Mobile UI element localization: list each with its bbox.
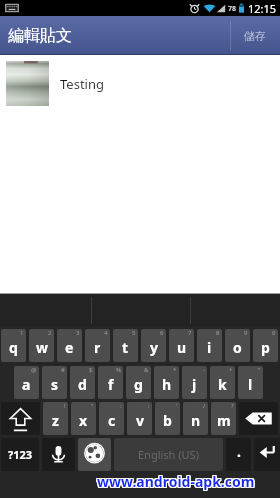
staticText: www.android-apk.com xyxy=(96,471,254,490)
button[interactable]: 1 xyxy=(1,329,26,362)
button[interactable]: 9 xyxy=(225,329,250,362)
staticText: t xyxy=(122,338,129,357)
button[interactable]: / xyxy=(183,402,208,435)
button[interactable]: 4 xyxy=(85,329,110,362)
button[interactable]: ? xyxy=(211,402,236,435)
button[interactable]: & xyxy=(126,366,151,399)
button[interactable]: * xyxy=(154,366,179,399)
staticText: 3 xyxy=(76,329,80,337)
staticText: g xyxy=(134,375,143,394)
button[interactable]: $ xyxy=(70,366,95,399)
staticText: : xyxy=(120,402,122,410)
button[interactable]: + xyxy=(210,366,235,399)
staticText: j xyxy=(192,375,197,394)
button[interactable]: . xyxy=(226,438,251,471)
staticText: www.android-apk.com xyxy=(98,472,256,491)
staticText: p xyxy=(261,338,270,357)
button[interactable]: Delete xyxy=(239,402,278,435)
staticText: d xyxy=(78,375,87,394)
button[interactable]: : xyxy=(99,402,124,435)
staticText: www.android-apk.com xyxy=(98,473,256,492)
button[interactable]: " xyxy=(71,402,96,435)
staticText: www.android-apk.com xyxy=(96,472,254,491)
staticText: * xyxy=(173,366,177,374)
button[interactable]: % xyxy=(98,366,123,399)
button[interactable]: 6 xyxy=(141,329,166,362)
staticText: m xyxy=(217,411,231,430)
button[interactable]: ?123 xyxy=(1,438,39,471)
button[interactable]: 2 xyxy=(29,329,54,362)
staticText: 7 xyxy=(188,329,192,337)
staticText: 9 xyxy=(244,329,248,337)
staticText: www.android-apk.com xyxy=(96,473,254,492)
staticText: n xyxy=(191,411,201,430)
staticText: l xyxy=(248,375,253,394)
button[interactable]: English (US) xyxy=(114,438,223,471)
staticText: " xyxy=(91,402,94,410)
button[interactable]: ! xyxy=(43,402,68,435)
staticText: q xyxy=(9,338,18,357)
button[interactable]: 8 xyxy=(197,329,222,362)
staticText: # xyxy=(61,366,65,374)
button[interactable]: @ xyxy=(14,366,39,399)
staticText: 1 xyxy=(20,329,24,337)
staticText: k xyxy=(218,375,227,394)
button[interactable]: Shift xyxy=(1,402,40,435)
staticText: www.android-apk.com xyxy=(98,471,256,490)
staticText: i xyxy=(207,338,212,357)
staticText: 12:15 xyxy=(248,1,277,16)
button[interactable]: # xyxy=(42,366,67,399)
button[interactable]: 0 xyxy=(253,329,278,362)
button[interactable]: Testing xyxy=(0,55,280,112)
button[interactable]: " xyxy=(238,366,263,399)
staticText: ' xyxy=(176,402,178,410)
button[interactable]: Enter xyxy=(254,438,280,471)
staticText: Testing xyxy=(60,75,104,93)
staticText: . xyxy=(237,442,241,461)
button[interactable]: - xyxy=(182,366,207,399)
staticText: x xyxy=(79,411,88,430)
staticText: 8 xyxy=(216,329,220,337)
staticText: f xyxy=(108,375,114,394)
staticText: u xyxy=(177,338,187,357)
staticText: 4 xyxy=(104,329,108,337)
staticText: h xyxy=(162,375,172,394)
staticText: e xyxy=(65,338,74,357)
staticText: @ xyxy=(31,366,37,374)
staticText: 5 xyxy=(132,329,136,337)
staticText: 0 xyxy=(272,329,276,337)
button[interactable]: ' xyxy=(155,402,180,435)
staticText: z xyxy=(52,411,59,430)
staticText: $ xyxy=(89,366,93,374)
staticText: 78 xyxy=(228,4,237,14)
staticText: ! xyxy=(64,402,66,410)
button[interactable]: ; xyxy=(127,402,152,435)
staticText: / xyxy=(203,402,206,410)
button[interactable]: 3 xyxy=(57,329,82,362)
staticText: 6 xyxy=(160,329,164,337)
staticText: www.android-apk.com xyxy=(97,473,255,492)
staticText: + xyxy=(229,366,233,374)
staticText: r xyxy=(94,338,101,357)
staticText: & xyxy=(144,366,149,374)
staticText: % xyxy=(116,366,121,374)
staticText: a xyxy=(22,375,31,394)
staticText: 儲存 xyxy=(244,29,266,43)
staticText: v xyxy=(136,411,144,430)
button[interactable]: Voice input xyxy=(42,438,75,471)
button[interactable]: Change keyboard language xyxy=(78,438,111,471)
staticText: y xyxy=(150,338,158,357)
staticText: ?123 xyxy=(8,447,33,462)
button[interactable]: 儲存 xyxy=(230,16,280,55)
staticText: b xyxy=(163,411,172,430)
staticText: 2 xyxy=(48,329,52,337)
staticText: www.android-apk.com xyxy=(97,471,255,490)
staticText: c xyxy=(108,411,116,430)
staticText: o xyxy=(233,338,242,357)
staticText: ? xyxy=(231,402,234,410)
staticText: 編輯貼文 xyxy=(8,26,72,46)
staticText: w xyxy=(36,338,48,357)
staticText: English (US) xyxy=(138,447,199,462)
button[interactable]: 7 xyxy=(169,329,194,362)
button[interactable]: 5 xyxy=(113,329,138,362)
